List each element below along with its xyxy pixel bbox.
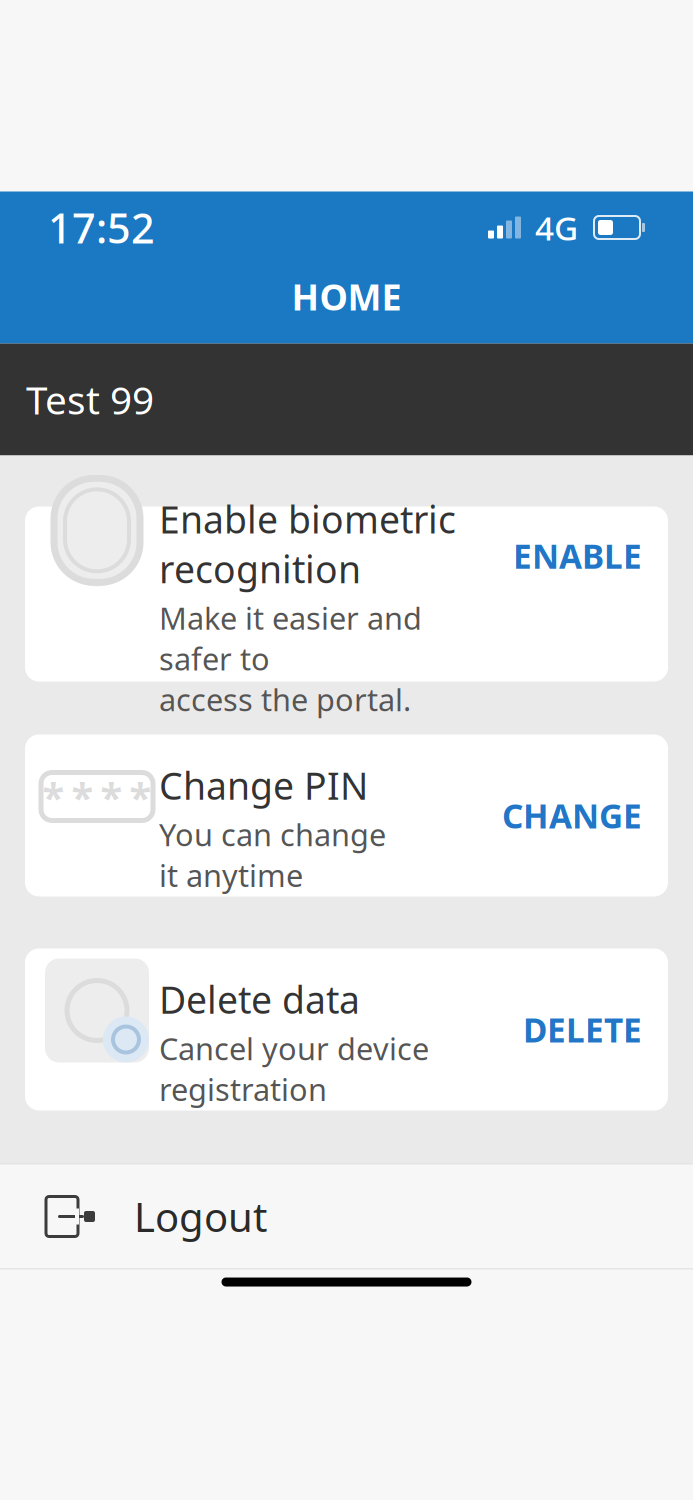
staticText: Change PIN bbox=[159, 760, 368, 810]
staticText: Enable biometric recognition bbox=[159, 494, 456, 593]
staticText: * bbox=[71, 770, 93, 823]
staticText: * bbox=[42, 770, 64, 823]
staticText: * bbox=[100, 770, 122, 823]
button[interactable]: Logout bbox=[0, 1164, 693, 1268]
staticText: Logout bbox=[134, 1190, 267, 1243]
button[interactable]: DELETE bbox=[513, 999, 652, 1060]
staticText: HOME bbox=[291, 273, 401, 320]
staticText: 4G bbox=[535, 205, 578, 250]
button[interactable]: CHANGE bbox=[492, 785, 652, 846]
button[interactable]: ENABLE bbox=[503, 526, 652, 586]
staticText: DELETE bbox=[523, 1007, 642, 1052]
staticText: CHANGE bbox=[502, 793, 642, 838]
staticText: 17:52 bbox=[48, 200, 155, 255]
staticText: Make it easier and safer to access the p… bbox=[159, 597, 422, 720]
staticText: Test 99 bbox=[26, 374, 154, 425]
staticText: ENABLE bbox=[513, 534, 642, 578]
staticText: * bbox=[129, 770, 151, 823]
staticText: You can change it anytime bbox=[159, 814, 386, 895]
staticText: Cancel your device registration bbox=[159, 1028, 429, 1109]
staticText: Delete data bbox=[159, 974, 360, 1024]
